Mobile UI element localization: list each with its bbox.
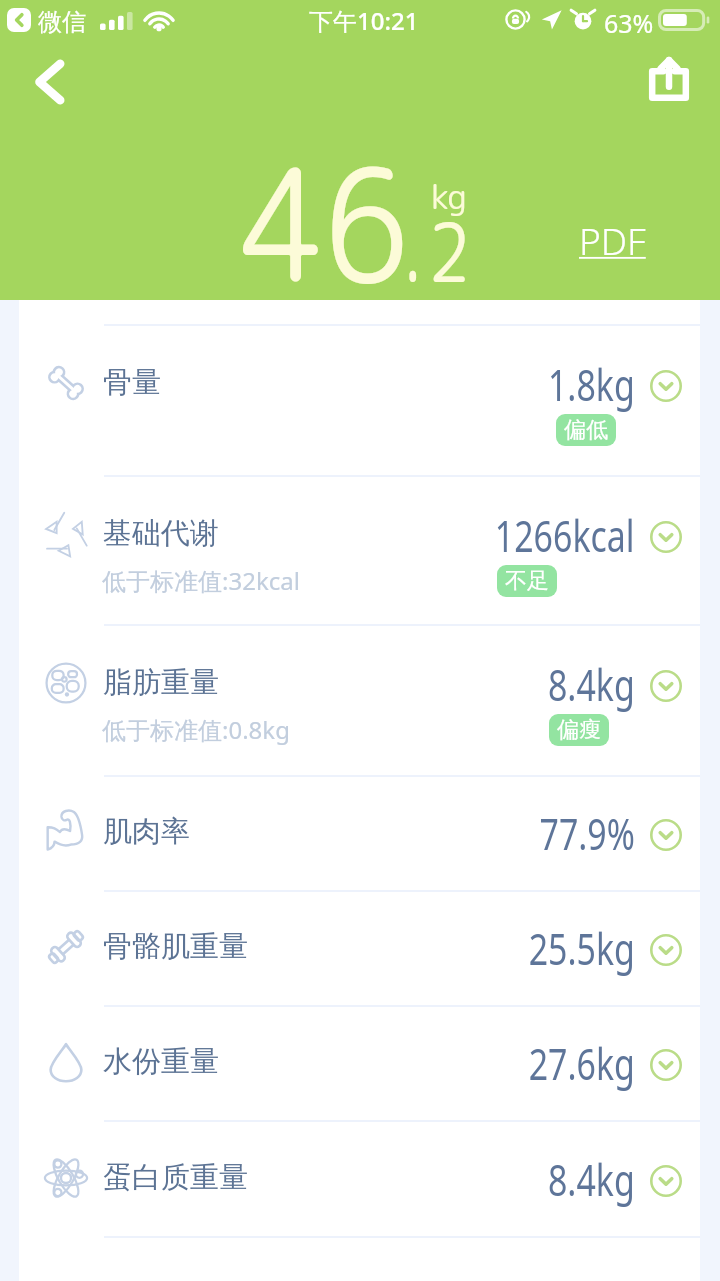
other: Expand 基础代谢	[650, 521, 682, 553]
button[interactable]: 骨骼肌重量	[0, 890, 720, 1005]
staticText: 不足	[505, 567, 549, 595]
button[interactable]: 骨量	[0, 324, 720, 475]
staticText: 77.9%	[539, 803, 635, 863]
button[interactable]: Back to WeChat	[7, 8, 31, 32]
staticText: 骨量	[103, 364, 161, 401]
staticText: 肌肉率	[103, 813, 190, 850]
button[interactable]: 水份重量	[0, 1005, 720, 1120]
staticText: 偏瘦	[557, 716, 601, 744]
staticText: 微信	[38, 7, 86, 37]
staticText: kg	[431, 172, 467, 219]
other: Expand 骨量	[650, 370, 682, 402]
button[interactable]: 内脏脂肪	[0, 1236, 720, 1281]
button[interactable]: 蛋白质重量	[0, 1120, 720, 1236]
staticText: 低于标准值:0.8kg	[102, 713, 290, 746]
button[interactable]: PDF	[571, 208, 654, 272]
button[interactable]: 脂肪重量	[0, 624, 720, 775]
button[interactable]: Back	[18, 50, 82, 114]
button[interactable]: Share	[640, 52, 698, 110]
other: Expand 蛋白质重量	[650, 1165, 682, 1197]
other: Expand 骨骼肌重量	[650, 934, 682, 966]
staticText: 下午10:21	[309, 4, 419, 37]
staticText: 蛋白质重量	[103, 1159, 248, 1196]
staticText: 8.4kg	[548, 1149, 635, 1209]
staticText: 63%	[604, 6, 654, 40]
other: Expand 肌肉率	[650, 819, 682, 851]
staticText: 基础代谢	[103, 515, 219, 552]
staticText: 1.8kg	[548, 354, 635, 414]
button[interactable]: 基础代谢	[0, 475, 720, 624]
staticText: 46	[241, 113, 409, 332]
staticText: 8.4kg	[548, 654, 635, 714]
staticText: 水份重量	[103, 1043, 219, 1080]
staticText: 1266kcal	[495, 505, 635, 565]
staticText: .	[403, 196, 423, 308]
staticText: 骨骼肌重量	[103, 928, 248, 965]
staticText: 2	[428, 196, 471, 308]
button[interactable]: 肌肉率	[0, 775, 720, 890]
staticText: 偏低	[564, 416, 608, 444]
staticText: PDF	[579, 215, 646, 265]
other: Expand 脂肪重量	[650, 670, 682, 702]
staticText: 27.6kg	[529, 1033, 635, 1093]
staticText: 25.5kg	[529, 918, 635, 978]
staticText: 低于标准值:32kcal	[102, 564, 300, 597]
staticText: 脂肪重量	[103, 664, 219, 701]
other: Expand 水份重量	[650, 1049, 682, 1081]
